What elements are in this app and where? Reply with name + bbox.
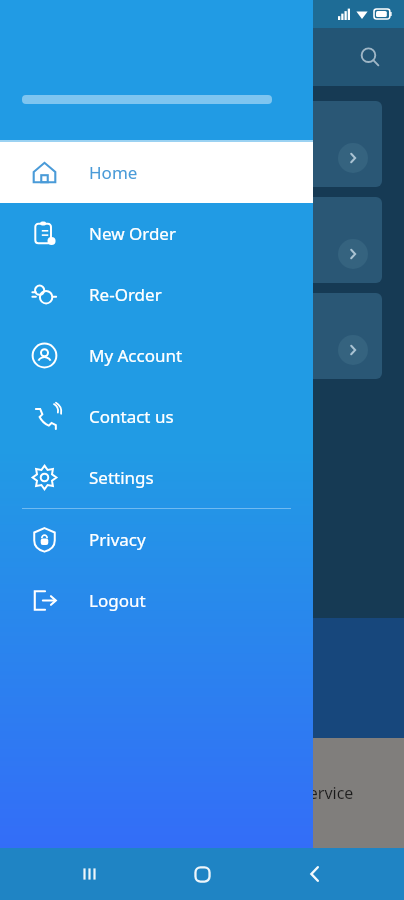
button[interactable]: Privacy xyxy=(0,509,313,570)
button[interactable]: Health xyxy=(22,101,382,187)
button[interactable]: Back xyxy=(291,850,339,898)
button[interactable]: Logout xyxy=(0,570,313,631)
staticText: Conditions xyxy=(36,207,112,227)
button[interactable]: New Order xyxy=(0,203,313,264)
button[interactable]: Home xyxy=(0,142,313,203)
staticText: Privacy xyxy=(89,528,146,551)
staticText: Logout xyxy=(89,589,146,612)
button[interactable]: Re-Order xyxy=(0,264,313,325)
button[interactable]: Search xyxy=(350,37,390,77)
button[interactable]: Home xyxy=(178,850,226,898)
staticText: New Order xyxy=(89,222,176,245)
button[interactable]: Conditions xyxy=(22,197,382,283)
staticText: Re-Order xyxy=(89,283,162,306)
button[interactable]: Contact us xyxy=(0,386,313,447)
button[interactable]: Recents xyxy=(65,850,113,898)
staticText: Settings xyxy=(89,466,154,489)
button[interactable]: Online xyxy=(22,293,382,379)
button[interactable]: Settings xyxy=(0,447,313,508)
staticText: Service xyxy=(300,782,354,804)
staticText: Home xyxy=(89,161,138,184)
button[interactable]: My Account xyxy=(0,325,313,386)
staticText: My Account xyxy=(89,344,183,367)
staticText: Contact us xyxy=(89,405,174,428)
staticText: Online xyxy=(36,303,83,323)
